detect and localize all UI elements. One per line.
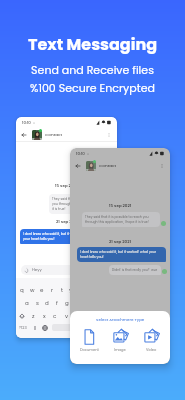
staticText: c <box>53 312 57 320</box>
button[interactable]: Space <box>52 324 115 331</box>
button[interactable]: e <box>38 285 46 294</box>
staticText: 21 Sep 2021 <box>109 239 131 245</box>
button[interactable]: Document <box>77 328 101 352</box>
staticText: g <box>65 299 69 307</box>
button[interactable]: They said that it is possible to reach y… <box>49 194 112 214</box>
staticText: x <box>43 312 46 320</box>
staticText: I dont know who said it, but it worked! … <box>23 232 93 241</box>
staticText: They said that it is possible to reach y… <box>52 197 109 211</box>
button[interactable]: I dont know who said it, but it worked! … <box>20 229 96 244</box>
button[interactable]: Heyy <box>21 265 112 275</box>
staticText: Contact <box>45 132 63 138</box>
staticText: q <box>20 286 24 294</box>
button[interactable]: d <box>43 298 51 307</box>
button[interactable]: I was sure! <box>86 256 112 266</box>
staticText: They said that it is possible to reach y… <box>85 215 157 224</box>
staticText: I dont know who said it, but it worked! … <box>80 250 163 259</box>
staticText: Contact <box>99 163 117 169</box>
staticText: %100 Secure Encrypted <box>30 80 155 95</box>
staticText: f <box>56 299 58 307</box>
staticText: a <box>25 299 29 307</box>
button[interactable]: Video <box>139 328 163 352</box>
button[interactable]: Emoji <box>32 325 38 331</box>
staticText: I was sure! <box>89 259 106 263</box>
button[interactable]: Didnt' is that really you? eue <box>109 265 161 275</box>
staticText: Didnt' is that really you? eue <box>112 268 158 272</box>
button[interactable]: More options <box>158 162 166 170</box>
button[interactable]: r <box>48 285 56 294</box>
staticText: Video <box>146 347 157 352</box>
staticText: w <box>30 286 35 294</box>
button[interactable]: z <box>29 311 37 320</box>
staticText: ?123 <box>19 325 27 330</box>
staticText: t <box>61 286 64 294</box>
staticText: m <box>97 312 103 320</box>
button[interactable]: t <box>58 285 66 294</box>
button[interactable]: Back <box>20 131 28 139</box>
button[interactable]: Back <box>74 162 82 170</box>
staticText: Text Messaging <box>28 33 158 55</box>
staticText: 15 Sep 2021 <box>109 203 132 209</box>
button[interactable]: They said that it is possible to reach y… <box>82 212 160 227</box>
staticText: s <box>36 299 39 307</box>
staticText: e <box>40 286 44 294</box>
button[interactable]: m <box>96 311 104 320</box>
button[interactable]: Language <box>41 324 48 331</box>
staticText: Document <box>80 347 99 352</box>
staticText: y <box>69 286 73 294</box>
button[interactable]: c <box>51 311 59 320</box>
button[interactable]: More options <box>105 131 113 139</box>
button[interactable]: q <box>18 285 26 294</box>
staticText: Select Attachment Type <box>96 317 145 323</box>
staticText: Heyy <box>32 267 42 273</box>
button[interactable]: a <box>23 298 31 307</box>
staticText: d <box>45 299 49 307</box>
staticText: z <box>32 312 35 320</box>
staticText: 15 Sep 2021 <box>55 183 78 189</box>
button[interactable]: Image <box>108 328 132 352</box>
staticText: Didnt' it? <box>90 250 104 254</box>
staticText: v <box>65 312 69 320</box>
button[interactable]: f <box>53 298 61 307</box>
button[interactable]: Didnt' it? <box>87 247 112 257</box>
staticText: 10:10 <box>22 120 31 126</box>
staticText: r <box>51 286 54 294</box>
button[interactable]: x <box>40 311 48 320</box>
button[interactable]: I dont know who said it, but it worked! … <box>77 247 166 262</box>
button[interactable]: Shift <box>18 312 26 320</box>
button[interactable]: g <box>63 298 71 307</box>
staticText: 10:10 <box>76 151 85 157</box>
button[interactable]: w <box>28 285 36 294</box>
button[interactable]: b <box>74 311 82 320</box>
staticText: Send and Receive files <box>31 62 154 77</box>
button[interactable]: v <box>63 311 71 320</box>
button[interactable]: y <box>67 285 75 294</box>
button[interactable]: s <box>33 298 41 307</box>
button[interactable]: Backspace <box>107 312 115 320</box>
staticText: 21 Sep 2021 <box>56 219 78 225</box>
staticText: Image <box>114 347 126 352</box>
